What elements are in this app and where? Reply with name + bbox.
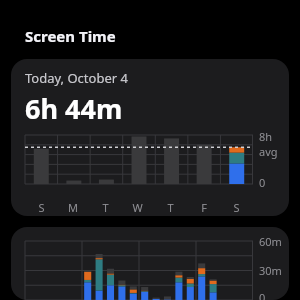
- staticText: S: [38, 200, 45, 215]
- staticText: F: [201, 200, 207, 215]
- staticText: 0: [259, 290, 266, 300]
- staticText: 0: [259, 175, 266, 190]
- staticText: 60m: [259, 234, 282, 249]
- staticText: T: [167, 200, 174, 215]
- staticText: S: [233, 200, 240, 215]
- staticText: T: [102, 200, 109, 215]
- staticText: W: [132, 200, 143, 215]
- button[interactable]: 60m: [11, 227, 289, 300]
- staticText: Screen Time: [25, 26, 116, 46]
- staticText: Today, October 4: [25, 69, 128, 87]
- staticText: 8h: [259, 129, 273, 144]
- staticText: 6h 44m: [25, 90, 123, 127]
- staticText: avg: [259, 144, 278, 159]
- staticText: 30m: [259, 263, 282, 278]
- staticText: M: [68, 200, 78, 215]
- button[interactable]: Today, October 4: [11, 59, 289, 216]
